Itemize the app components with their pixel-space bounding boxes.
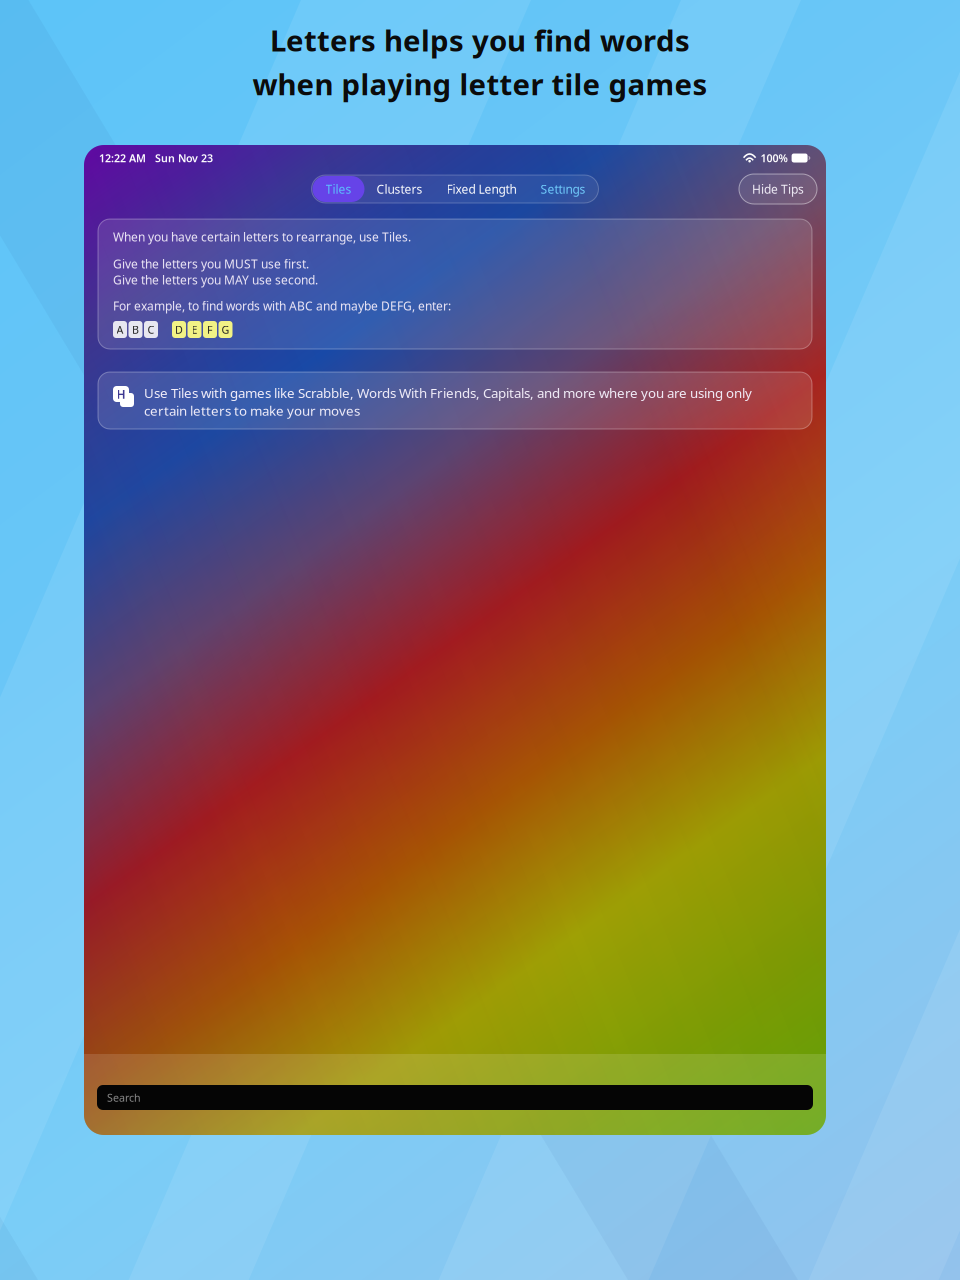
staticText: Sun Nov 23 [155, 151, 213, 165]
button[interactable]: Clusters [364, 176, 434, 202]
staticText: Hide Tips [752, 181, 804, 197]
staticText: 12:22 AM [99, 151, 146, 165]
staticText: For example, to find words with ABC and … [113, 298, 451, 314]
staticText: F [207, 322, 213, 337]
staticText: When you have certain letters to rearran… [113, 229, 411, 245]
staticText: Settings [540, 181, 585, 197]
staticText: D [175, 322, 183, 337]
staticText: C [147, 322, 154, 337]
button[interactable]: Tiles [312, 176, 364, 202]
staticText: Search [107, 1090, 141, 1105]
staticText: Give the letters you MAY use second. [113, 272, 318, 288]
staticText: E [191, 322, 197, 337]
staticText: Tiles [325, 181, 351, 197]
staticText: Clusters [376, 181, 422, 197]
button[interactable]: Fixed Length [434, 176, 528, 202]
button[interactable]: Settings [528, 176, 597, 202]
button[interactable]: Search [97, 1085, 813, 1110]
staticText: when playing letter tile games [252, 64, 707, 103]
staticText: Letters helps you find words [270, 20, 690, 59]
staticText: Give the letters you MUST use first. [113, 256, 309, 272]
staticText: 100% [761, 151, 788, 165]
staticText: G [221, 322, 229, 337]
staticText: Use Tiles with games like Scrabble, Word… [144, 384, 752, 419]
staticText: A [116, 322, 123, 337]
staticText: Fixed Length [446, 181, 516, 197]
button[interactable]: Hide Tips [739, 174, 817, 204]
staticText: B [132, 322, 139, 337]
staticText: H [116, 386, 125, 402]
